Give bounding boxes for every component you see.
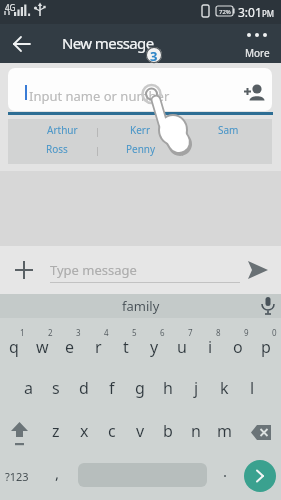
staticText: o	[233, 336, 243, 358]
staticText: .	[223, 461, 228, 481]
staticText: Kerr	[130, 123, 151, 137]
staticText: p	[261, 336, 271, 358]
button[interactable]	[254, 294, 281, 318]
staticText: 1	[20, 327, 25, 338]
button[interactable]: u	[168, 335, 196, 359]
button[interactable]	[244, 460, 276, 492]
staticText: PM	[262, 8, 275, 18]
button[interactable]: d	[70, 377, 98, 399]
button[interactable]: j	[182, 377, 210, 399]
button[interactable]	[240, 26, 276, 60]
staticText: 4	[104, 327, 109, 338]
button[interactable]: m	[210, 420, 238, 442]
button[interactable]	[8, 254, 40, 286]
button[interactable]: Kerr	[112, 122, 168, 138]
staticText: i	[208, 336, 213, 358]
staticText: 3	[150, 47, 158, 63]
staticText: a	[24, 377, 33, 399]
staticText: x	[80, 420, 89, 442]
staticText: More	[245, 46, 270, 59]
staticText: u	[177, 336, 187, 358]
button[interactable]: e	[56, 335, 84, 359]
button[interactable]	[8, 68, 272, 111]
button[interactable]: g	[126, 377, 154, 399]
button[interactable]: f	[98, 377, 126, 399]
staticText: z	[52, 420, 60, 442]
button[interactable]: q	[0, 335, 28, 359]
button[interactable]: r	[84, 335, 112, 359]
button[interactable]: s	[42, 377, 70, 399]
button[interactable]: .	[215, 460, 235, 482]
button[interactable]: h	[154, 377, 182, 399]
staticText: 4G	[5, 2, 16, 12]
button[interactable]	[4, 418, 34, 450]
staticText: h	[163, 377, 173, 399]
button[interactable]: i	[196, 335, 224, 359]
staticText: b	[163, 420, 173, 442]
button[interactable]	[243, 256, 273, 286]
staticText: m	[217, 420, 232, 442]
button[interactable]	[244, 418, 277, 446]
staticText: Arthur	[47, 123, 78, 137]
staticText: |	[180, 144, 185, 156]
staticText: 7	[188, 327, 193, 338]
button[interactable]: ?123	[1, 467, 33, 485]
staticText: Type message	[50, 261, 137, 279]
button[interactable]	[238, 78, 268, 106]
staticText: 5	[132, 327, 137, 338]
staticText: y	[150, 336, 159, 358]
staticText: 3:01	[238, 4, 262, 19]
button[interactable]: Penny	[113, 141, 169, 157]
button[interactable]: v	[126, 420, 154, 442]
button[interactable]: a	[14, 377, 42, 399]
staticText: r	[95, 336, 102, 358]
button[interactable]: b	[154, 420, 182, 442]
staticText: 2	[48, 327, 53, 338]
staticText: 0	[272, 327, 277, 338]
button[interactable]: Type message	[48, 252, 238, 288]
button[interactable]: t	[112, 335, 140, 359]
staticText: 6	[160, 327, 165, 338]
staticText: k	[220, 377, 229, 399]
button[interactable]: z	[42, 420, 70, 442]
button[interactable]: Ross	[29, 141, 85, 157]
button[interactable]: o	[224, 335, 252, 359]
staticText: q	[9, 336, 19, 358]
button[interactable]: Arthur	[34, 122, 90, 138]
button[interactable]: y	[140, 335, 168, 359]
button[interactable]: family	[100, 295, 181, 317]
button[interactable]: k	[210, 377, 238, 399]
staticText: f	[109, 377, 115, 399]
staticText: 8	[216, 327, 221, 338]
staticText: l	[250, 377, 255, 399]
staticText: ,	[55, 463, 60, 483]
button[interactable]: Sam	[200, 122, 256, 138]
staticText: |	[95, 125, 100, 137]
staticText: w	[36, 336, 49, 358]
staticText: s	[52, 377, 60, 399]
staticText: j	[194, 377, 199, 399]
button[interactable]: ,	[47, 462, 67, 484]
button[interactable]: w	[28, 335, 56, 359]
button[interactable]: c	[98, 420, 126, 442]
staticText: family	[122, 297, 160, 315]
button[interactable]: n	[182, 420, 210, 442]
button[interactable]: l	[238, 377, 266, 399]
staticText: 3	[76, 327, 81, 338]
staticText: Penny	[126, 142, 156, 156]
staticText: g	[135, 377, 145, 399]
staticText: t	[123, 336, 129, 358]
staticText: Input name or number	[29, 87, 170, 105]
staticText: n	[191, 420, 201, 442]
staticText: d	[79, 377, 89, 399]
button[interactable]: p	[252, 335, 280, 359]
button[interactable]: x	[70, 420, 98, 442]
staticText: e	[65, 336, 75, 358]
staticText: 72%	[219, 8, 231, 16]
button[interactable]	[8, 30, 36, 58]
staticText: Ross	[46, 142, 68, 156]
staticText: |	[95, 144, 100, 156]
staticText: v	[136, 420, 145, 442]
